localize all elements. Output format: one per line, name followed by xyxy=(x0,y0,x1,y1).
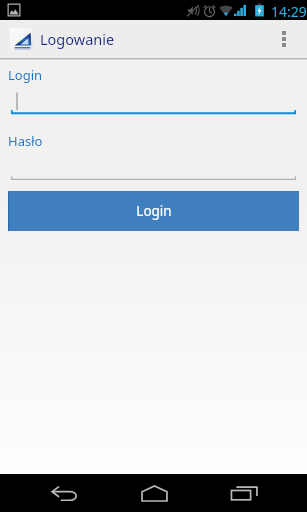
staticText: Login xyxy=(136,202,172,220)
staticText: Hasło xyxy=(8,132,43,150)
staticText: Logowanie xyxy=(40,29,115,49)
button[interactable]: More options xyxy=(267,20,301,58)
button[interactable] xyxy=(0,84,307,114)
button[interactable]: Login xyxy=(8,191,299,231)
staticText: Login xyxy=(8,66,43,84)
staticText: 14:29 xyxy=(271,2,307,21)
button[interactable]: Recent apps xyxy=(204,474,284,512)
button[interactable]: Back xyxy=(24,474,104,512)
button[interactable] xyxy=(0,150,307,180)
button[interactable]: Home xyxy=(114,474,194,512)
